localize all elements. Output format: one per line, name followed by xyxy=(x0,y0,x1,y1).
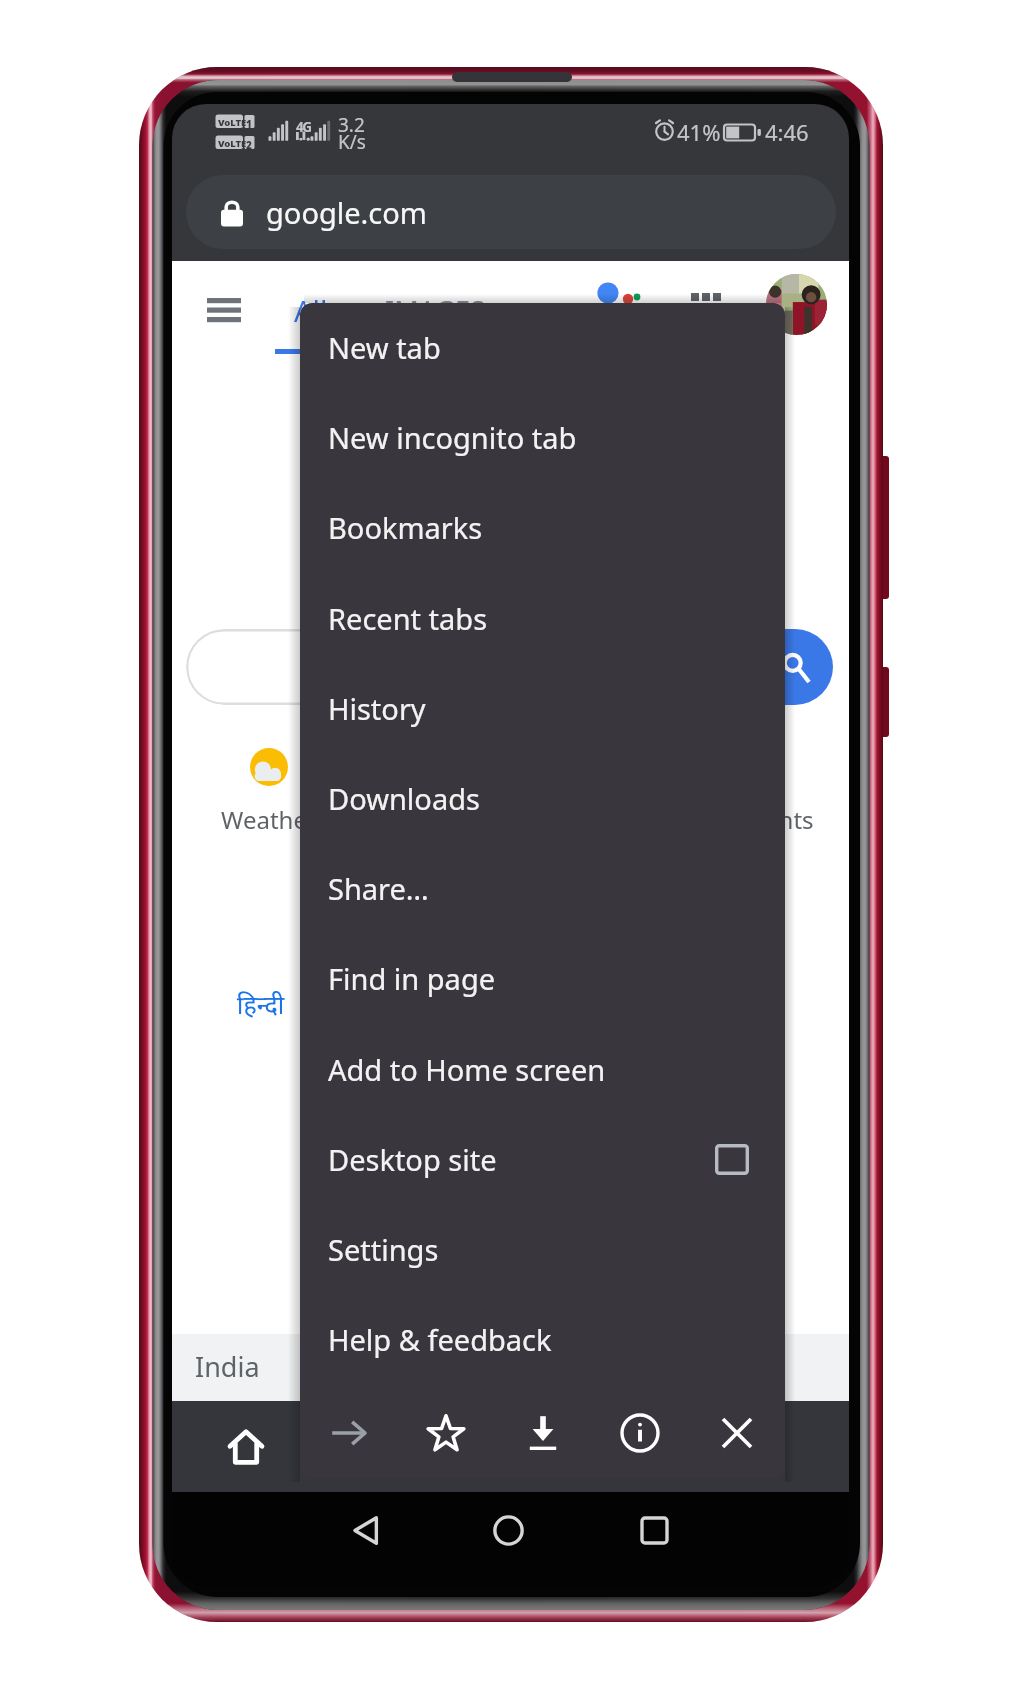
staticText: 2 xyxy=(246,138,252,152)
button[interactable]: Sports xyxy=(350,748,513,836)
staticText: 3.2 xyxy=(338,112,365,138)
button[interactable]: Forward xyxy=(300,1388,397,1478)
staticText: Add to Home screen xyxy=(328,1050,606,1089)
button[interactable] xyxy=(186,629,790,705)
staticText: Help & feedback xyxy=(328,1320,552,1359)
staticText: Downloads xyxy=(328,779,480,818)
button[interactable]: Google apps xyxy=(691,293,720,302)
staticText: 4:46 xyxy=(765,117,809,147)
staticText: 1 xyxy=(246,117,252,131)
staticText: Payments xyxy=(702,803,814,836)
staticText: google.com xyxy=(266,193,427,232)
button[interactable]: Settings xyxy=(300,1204,785,1294)
staticText: Settings xyxy=(328,1230,439,1269)
button[interactable]: Home xyxy=(480,1502,536,1558)
button[interactable]: Bookmarks xyxy=(300,482,785,572)
staticText: K/s xyxy=(338,129,366,155)
button[interactable]: New incognito tab xyxy=(300,392,785,482)
staticText: India xyxy=(195,1348,260,1385)
button[interactable]: Bookmark xyxy=(397,1388,494,1478)
staticText: Bookmarks xyxy=(328,508,483,547)
button[interactable]: Google Account xyxy=(766,274,827,335)
staticText: Find in page xyxy=(328,959,496,998)
staticText: New incognito tab xyxy=(328,418,577,457)
staticText: Recent tabs xyxy=(328,599,488,638)
staticText: Share… xyxy=(328,869,429,908)
staticText: VoLTE xyxy=(218,137,247,150)
button[interactable]: Share… xyxy=(300,843,785,933)
staticText: 41% xyxy=(677,117,721,147)
staticText: Desktop site xyxy=(328,1140,497,1179)
staticText: All xyxy=(294,291,328,330)
button[interactable]: Search xyxy=(740,629,833,705)
staticText: हिन्दी xyxy=(237,987,285,1021)
button[interactable]: Recent apps xyxy=(626,1502,682,1558)
button[interactable]: Back xyxy=(338,1502,394,1558)
button[interactable]: Find in page xyxy=(300,933,785,1023)
button[interactable]: google.com xyxy=(186,175,836,249)
button[interactable]: History xyxy=(300,663,785,753)
staticText: History xyxy=(328,689,426,728)
button[interactable]: Recent tabs xyxy=(300,573,785,663)
button[interactable]: Desktop site xyxy=(300,1114,785,1204)
button[interactable]: New tab xyxy=(300,303,785,392)
button[interactable]: Add to Home screen xyxy=(300,1024,785,1114)
button[interactable]: Main menu xyxy=(192,283,256,335)
staticText: 4G xyxy=(296,118,311,136)
staticText: Sports xyxy=(395,803,468,836)
staticText: Weather xyxy=(221,803,317,836)
button[interactable]: Weather xyxy=(187,748,350,836)
button[interactable]: Page info xyxy=(591,1388,688,1478)
button[interactable]: Home xyxy=(220,1421,272,1473)
button[interactable]: Close xyxy=(688,1388,785,1478)
staticText: VoLTE xyxy=(218,116,247,129)
staticText: IMAGES xyxy=(385,292,485,329)
button[interactable]: Download xyxy=(494,1388,591,1478)
staticText: New tab xyxy=(328,328,441,367)
button[interactable]: Downloads xyxy=(300,753,785,843)
button[interactable]: Help & feedback xyxy=(300,1294,785,1384)
button[interactable]: Payments xyxy=(676,748,839,836)
